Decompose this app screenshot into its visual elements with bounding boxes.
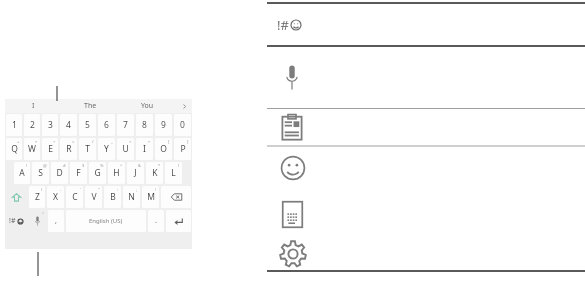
staticText: ° [42, 211, 44, 217]
staticText: J [134, 167, 137, 179]
button[interactable]: H [108, 162, 125, 184]
staticText: ! [155, 187, 157, 193]
staticText: Y [104, 143, 109, 155]
button[interactable]: 1 [6, 114, 22, 136]
button[interactable]: . [148, 210, 164, 232]
staticText: C [72, 191, 78, 203]
staticText: O [160, 143, 167, 155]
button[interactable]: English (US) [66, 210, 146, 232]
staticText: S [38, 167, 43, 179]
staticText: $ [82, 163, 85, 169]
button[interactable]: R [60, 138, 77, 160]
button[interactable]: , [48, 210, 64, 232]
button[interactable]: Clipboard [267, 110, 585, 144]
button[interactable]: 3 [42, 114, 58, 136]
staticText: 4 [66, 119, 71, 131]
staticText: & [138, 163, 142, 169]
button[interactable]: Y [98, 138, 115, 160]
button[interactable]: 5 [79, 114, 96, 136]
staticText: 7 [123, 119, 128, 131]
button[interactable]: E [42, 138, 58, 160]
staticText: H [113, 167, 120, 179]
button[interactable]: The [62, 99, 119, 113]
button[interactable]: D [51, 162, 68, 184]
button[interactable]: V [85, 186, 102, 208]
staticText: Z [35, 191, 40, 203]
button[interactable]: 4 [60, 114, 77, 136]
button[interactable]: O [155, 138, 172, 160]
staticText: @ [43, 163, 47, 169]
button[interactable]: K [146, 162, 163, 184]
staticText: - [60, 187, 62, 193]
staticText: ^ [120, 163, 123, 169]
button[interactable]: P [174, 138, 191, 160]
button[interactable]: F [70, 162, 87, 184]
staticText: I [32, 101, 35, 111]
staticText: D [56, 167, 63, 179]
button[interactable]: 7 [117, 114, 134, 136]
button[interactable]: L [165, 162, 182, 184]
button[interactable]: T [79, 138, 96, 160]
button[interactable]: Settings [267, 237, 585, 270]
staticText: * [158, 163, 161, 169]
staticText: = [72, 139, 75, 145]
button[interactable]: Z [29, 186, 45, 208]
staticText: L [171, 167, 176, 179]
button[interactable]: !# [6, 210, 26, 232]
staticText: V [91, 191, 97, 203]
staticText: / [92, 139, 94, 145]
button[interactable]: J [127, 162, 144, 184]
staticText: K [152, 167, 158, 179]
button[interactable]: A [14, 162, 30, 184]
button[interactable] [6, 186, 27, 208]
button[interactable] [161, 186, 191, 208]
button[interactable]: W [24, 138, 40, 160]
button[interactable]: I [5, 99, 62, 113]
staticText: T [85, 143, 90, 155]
staticText: 5 [85, 119, 90, 131]
button[interactable]: B [104, 186, 121, 208]
staticText: B [110, 191, 116, 203]
staticText: % [100, 163, 104, 169]
staticText: N [128, 191, 135, 203]
button[interactable]: 9 [155, 114, 172, 136]
staticText: R [66, 143, 72, 155]
staticText: . [155, 216, 157, 226]
button[interactable]: 2 [24, 114, 40, 136]
button[interactable]: M [142, 186, 159, 208]
staticText: ] [187, 139, 189, 145]
button[interactable]: ° [28, 210, 46, 232]
staticText: !# [9, 216, 16, 226]
button[interactable] [166, 210, 191, 232]
staticText: _ [111, 139, 113, 145]
button[interactable]: Voice input [267, 47, 585, 107]
button[interactable]: Symbols and emoji [277, 6, 585, 44]
button[interactable]: G [89, 162, 106, 184]
staticText: # [63, 163, 66, 169]
button[interactable]: U [117, 138, 134, 160]
button[interactable]: I [136, 138, 153, 160]
staticText: [ [168, 139, 170, 145]
button[interactable]: Keyboard mode [267, 192, 585, 236]
button[interactable]: S [32, 162, 49, 184]
button[interactable]: X [47, 186, 64, 208]
staticText: 8 [142, 119, 147, 131]
button[interactable]: 6 [98, 114, 115, 136]
button[interactable]: Q [6, 138, 22, 160]
staticText: Q [11, 143, 18, 155]
button[interactable]: N [123, 186, 140, 208]
staticText: × [35, 139, 38, 145]
staticText: !# [277, 16, 289, 34]
button[interactable]: Stickers [267, 147, 585, 189]
button[interactable]: You [119, 99, 176, 113]
button[interactable]: C [66, 186, 83, 208]
staticText: X [53, 191, 58, 203]
button[interactable]: 0 [174, 114, 191, 136]
button[interactable]: More suggestions [176, 99, 192, 113]
staticText: A [19, 167, 25, 179]
button[interactable]: 8 [136, 114, 153, 136]
staticText: 9 [161, 119, 166, 131]
staticText: " [98, 187, 100, 193]
staticText: You [141, 101, 154, 111]
staticText: 0 [180, 119, 185, 131]
